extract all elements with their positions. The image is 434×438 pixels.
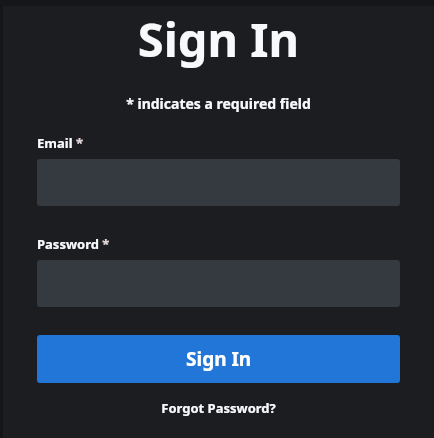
staticText: * indicates a required field: [3, 94, 434, 113]
staticText: Sign In: [186, 346, 252, 372]
staticText: Forgot Password?: [161, 399, 276, 417]
button[interactable]: Forgot Password?: [37, 399, 400, 417]
button[interactable]: Sign In: [37, 335, 400, 383]
staticText: Email *: [37, 134, 83, 152]
staticText: Sign In: [3, 7, 434, 71]
staticText: Password *: [37, 235, 110, 253]
